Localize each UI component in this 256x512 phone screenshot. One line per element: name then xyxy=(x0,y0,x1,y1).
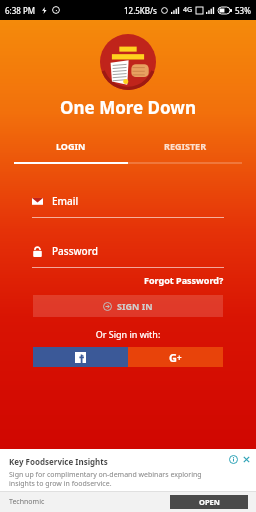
button[interactable]: LOGIN xyxy=(14,137,128,155)
button[interactable]: Close ad xyxy=(242,455,251,464)
staticText: Email xyxy=(52,194,79,208)
button[interactable]: OPEN xyxy=(170,495,248,509)
staticText: LOGIN xyxy=(56,140,86,152)
staticText: SIGN IN xyxy=(117,300,153,312)
staticText: 4G xyxy=(183,5,193,15)
staticText: 53% xyxy=(235,5,251,16)
button[interactable]: Email xyxy=(32,194,224,218)
button[interactable]: Password xyxy=(32,244,224,268)
staticText: Or Sign in with: xyxy=(0,328,256,340)
staticText: Technomic xyxy=(9,497,45,507)
button[interactable]: REGISTER xyxy=(128,137,242,155)
button[interactable]: Sign in with Google xyxy=(128,347,223,367)
staticText: Key Foodservice Insights xyxy=(9,456,108,467)
staticText: 6:38 PM xyxy=(5,5,36,16)
staticText: One More Down xyxy=(0,96,256,119)
staticText: 12.5KB/s xyxy=(124,5,157,16)
staticText: + xyxy=(177,352,182,363)
button[interactable]: Ad information xyxy=(229,455,238,464)
staticText: Sign up for complimentary on-demand webi… xyxy=(9,470,222,488)
staticText: OPEN xyxy=(199,497,220,507)
button[interactable]: Forgot Password? xyxy=(144,274,224,286)
staticText: G xyxy=(169,350,177,365)
button[interactable]: SIGN IN xyxy=(33,295,223,317)
staticText: Password xyxy=(52,244,98,258)
button[interactable]: Sign in with Facebook xyxy=(33,347,128,367)
staticText: REGISTER xyxy=(164,140,207,152)
